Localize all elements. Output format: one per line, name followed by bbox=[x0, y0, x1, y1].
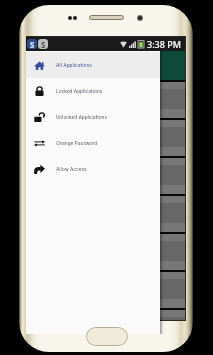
staticText: All Applications bbox=[56, 62, 92, 69]
button[interactable]: Allow Access bbox=[26, 156, 160, 182]
staticText: Locked Applications bbox=[56, 88, 103, 95]
button[interactable] bbox=[26, 82, 185, 118]
staticText: Unlocked Applications bbox=[56, 114, 108, 121]
button[interactable] bbox=[26, 310, 185, 320]
staticText: Change Password bbox=[56, 140, 98, 147]
staticText: S bbox=[41, 39, 46, 49]
button[interactable] bbox=[26, 234, 185, 270]
button[interactable]: Change Password bbox=[26, 130, 160, 156]
button[interactable]: Locked Applications bbox=[26, 78, 160, 104]
button[interactable] bbox=[26, 272, 185, 308]
button[interactable]: Unlocked Applications bbox=[26, 104, 160, 130]
staticText: 3:38 PM bbox=[147, 38, 181, 50]
button[interactable] bbox=[26, 158, 185, 194]
staticText: Allow Access bbox=[56, 166, 87, 173]
staticText: S bbox=[30, 39, 35, 49]
button[interactable] bbox=[26, 120, 185, 156]
button[interactable] bbox=[26, 196, 185, 232]
button[interactable]: Home bbox=[86, 327, 128, 346]
button[interactable]: All Applications bbox=[26, 52, 160, 78]
